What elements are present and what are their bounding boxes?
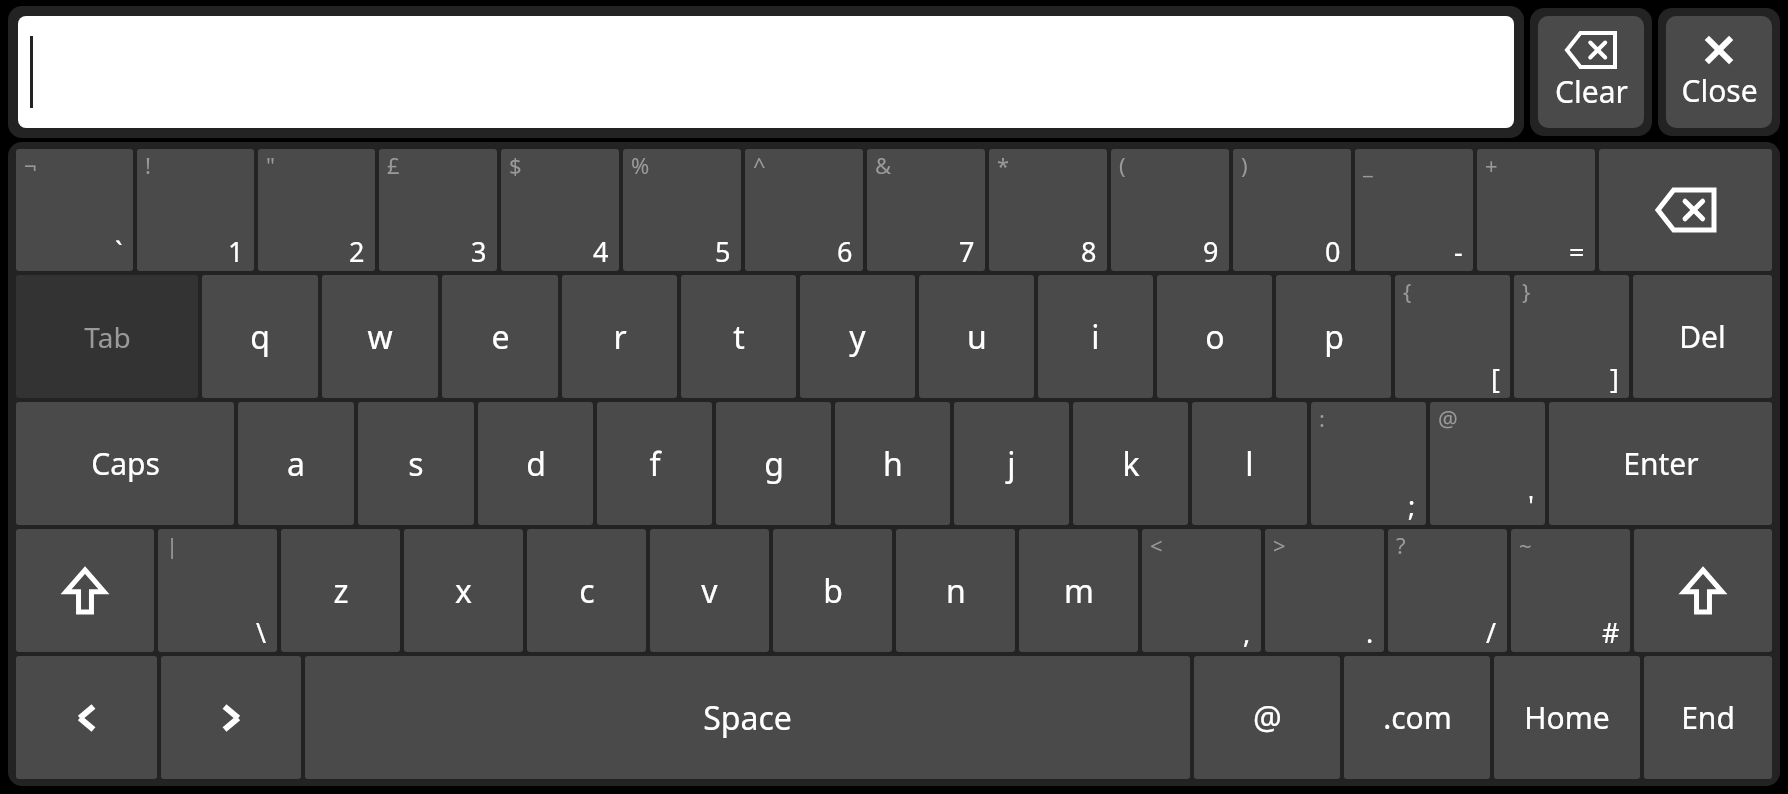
button[interactable]: ": [258, 149, 375, 271]
button[interactable]: Tab: [16, 275, 198, 398]
button[interactable]: Shift: [16, 529, 154, 652]
staticText: ;: [1408, 487, 1416, 524]
button[interactable]: ?: [1388, 529, 1507, 652]
staticText: `: [115, 233, 123, 270]
button[interactable]: i: [1038, 275, 1153, 398]
button[interactable]: Cursor right: [161, 656, 301, 779]
button[interactable]: o: [1157, 275, 1272, 398]
staticText: 8: [1081, 233, 1097, 270]
staticText: 7: [959, 233, 975, 270]
button[interactable]: ^: [745, 149, 863, 271]
staticText: x: [455, 569, 472, 613]
button[interactable]: &: [867, 149, 985, 271]
button[interactable]: t: [681, 275, 796, 398]
staticText: ~: [1519, 530, 1532, 560]
button[interactable]: Backspace: [1599, 149, 1772, 271]
staticText: \: [256, 614, 267, 651]
button[interactable]: £: [379, 149, 497, 271]
staticText: >: [1273, 530, 1286, 560]
staticText: a: [287, 442, 305, 486]
button[interactable]: @: [1430, 402, 1545, 525]
button[interactable]: Del: [1633, 275, 1772, 398]
button[interactable]: [18, 16, 1514, 128]
button[interactable]: Shift: [1634, 529, 1772, 652]
staticText: ]: [1610, 360, 1619, 397]
button[interactable]: a: [238, 402, 354, 525]
button[interactable]: (: [1111, 149, 1229, 271]
button[interactable]: b: [773, 529, 892, 652]
staticText: %: [631, 150, 650, 180]
staticText: |: [166, 530, 179, 560]
button[interactable]: r: [562, 275, 677, 398]
button[interactable]: ¬: [16, 149, 133, 271]
button[interactable]: <: [1142, 529, 1261, 652]
button[interactable]: h: [835, 402, 950, 525]
button[interactable]: Caps: [16, 402, 234, 525]
button[interactable]: l: [1192, 402, 1307, 525]
button[interactable]: $: [501, 149, 619, 271]
staticText: 2: [349, 233, 365, 270]
button[interactable]: Space: [305, 656, 1190, 779]
button[interactable]: f: [597, 402, 712, 525]
button[interactable]: m: [1019, 529, 1138, 652]
button[interactable]: .com: [1344, 656, 1490, 779]
staticText: 9: [1203, 233, 1219, 270]
button[interactable]: {: [1395, 275, 1510, 398]
button[interactable]: k: [1073, 402, 1188, 525]
staticText: w: [367, 315, 393, 359]
button[interactable]: e: [442, 275, 558, 398]
button[interactable]: Enter: [1549, 402, 1772, 525]
staticText: ,: [1243, 614, 1251, 651]
staticText: f: [649, 442, 661, 486]
staticText: =: [1569, 233, 1585, 270]
button[interactable]: x: [404, 529, 523, 652]
staticText: Close: [1681, 70, 1758, 111]
button[interactable]: v: [650, 529, 769, 652]
staticText: &: [875, 150, 892, 180]
staticText: Home: [1524, 697, 1610, 738]
button[interactable]: Cursor left: [16, 656, 157, 779]
button[interactable]: *: [989, 149, 1107, 271]
staticText: y: [849, 315, 866, 359]
button[interactable]: j: [954, 402, 1069, 525]
button[interactable]: y: [800, 275, 915, 398]
staticText: /: [1486, 614, 1497, 651]
staticText: s: [408, 442, 424, 486]
staticText: v: [701, 569, 718, 613]
button[interactable]: u: [919, 275, 1034, 398]
button[interactable]: >: [1265, 529, 1384, 652]
button[interactable]: !: [137, 149, 254, 271]
button[interactable]: |: [158, 529, 277, 652]
button[interactable]: n: [896, 529, 1015, 652]
button[interactable]: c: [527, 529, 646, 652]
staticText: 4: [593, 233, 609, 270]
button[interactable]: z: [281, 529, 400, 652]
button[interactable]: d: [478, 402, 593, 525]
button[interactable]: g: [716, 402, 831, 525]
button[interactable]: :: [1311, 402, 1426, 525]
button[interactable]: %: [623, 149, 741, 271]
button[interactable]: }: [1514, 275, 1629, 398]
staticText: i: [1091, 315, 1100, 359]
button[interactable]: @: [1194, 656, 1340, 779]
button[interactable]: +: [1477, 149, 1595, 271]
button[interactable]: p: [1276, 275, 1391, 398]
button[interactable]: _: [1355, 149, 1473, 271]
staticText: £: [387, 150, 400, 180]
button[interactable]: Home: [1494, 656, 1640, 779]
staticText: ": [266, 150, 275, 180]
button[interactable]: w: [322, 275, 438, 398]
button[interactable]: ~: [1511, 529, 1630, 652]
button[interactable]: q: [202, 275, 318, 398]
button[interactable]: s: [358, 402, 474, 525]
button[interactable]: ): [1233, 149, 1351, 271]
staticText: @: [1253, 696, 1282, 740]
button[interactable]: Close: [1666, 16, 1772, 128]
button[interactable]: Clear: [1538, 16, 1644, 128]
staticText: Caps: [91, 443, 160, 484]
staticText: (: [1119, 150, 1126, 180]
staticText: h: [883, 442, 903, 486]
staticText: 3: [471, 233, 487, 270]
button[interactable]: End: [1644, 656, 1772, 779]
staticText: j: [1007, 442, 1016, 486]
